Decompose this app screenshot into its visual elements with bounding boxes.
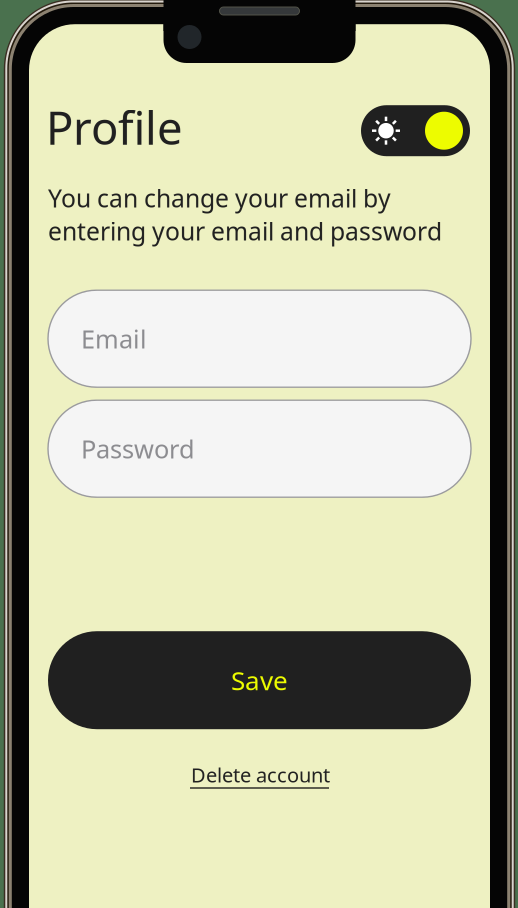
button[interactable]: Email [48, 290, 471, 387]
staticText: You can change your email by [48, 181, 391, 215]
staticText: Profile [46, 96, 183, 158]
button[interactable]: Delete account [48, 761, 471, 797]
button[interactable]: Save [48, 631, 471, 729]
staticText: Password [81, 431, 195, 466]
staticText: Delete account [191, 761, 330, 788]
staticText: Email [81, 321, 147, 356]
staticText: entering your email and password [48, 214, 442, 248]
button[interactable]: Toggle light mode [361, 105, 470, 156]
button[interactable]: Password [48, 400, 471, 497]
staticText: Save [231, 662, 288, 698]
